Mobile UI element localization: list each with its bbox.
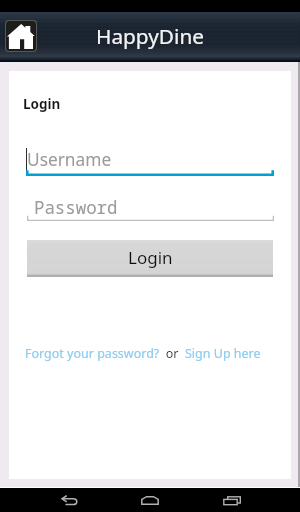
staticText: Login xyxy=(128,246,173,269)
staticText: Username xyxy=(27,148,112,172)
button[interactable]: Username xyxy=(26,148,274,176)
button[interactable]: Home xyxy=(130,488,170,512)
button[interactable]: Back xyxy=(49,488,89,512)
button[interactable]: Home xyxy=(6,21,36,51)
staticText: HappyDine xyxy=(96,22,204,50)
button[interactable]: Recent apps xyxy=(212,488,252,512)
staticText: Password xyxy=(34,195,118,219)
button[interactable]: Login xyxy=(27,240,273,277)
button[interactable]: Forgot your password? or Sign Up here xyxy=(25,345,261,362)
staticText: Login xyxy=(23,95,61,113)
staticText: Forgot your password? or Sign Up here xyxy=(25,345,261,362)
button[interactable]: Password xyxy=(27,193,274,221)
